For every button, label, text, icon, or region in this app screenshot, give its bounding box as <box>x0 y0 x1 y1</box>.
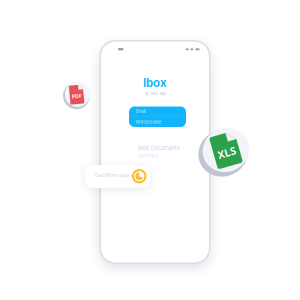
staticText: Mes Documents <box>138 145 180 152</box>
staticText: PDF <box>72 93 82 100</box>
staticText: Mot de passe <box>136 119 161 124</box>
staticText: Get More space <box>95 171 134 179</box>
staticText: by ibox app <box>144 91 165 96</box>
staticText: Email <box>136 109 146 114</box>
button[interactable]: Get More space <box>85 165 150 188</box>
staticText: Ibox <box>143 76 167 90</box>
staticText: XLS <box>216 146 235 160</box>
staticText: 589 Files <box>138 153 158 159</box>
